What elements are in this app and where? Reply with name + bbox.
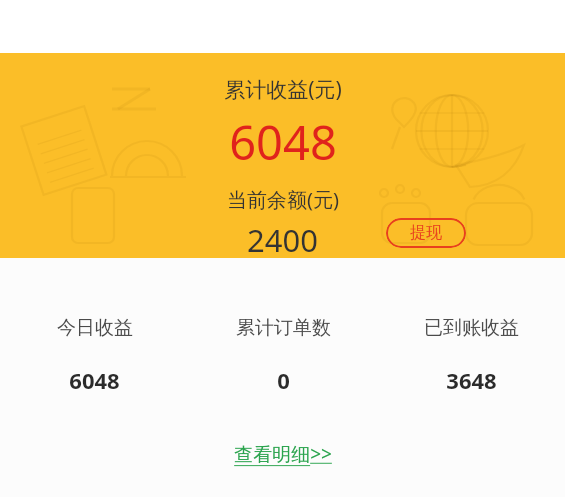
- staticText: 累计订单数: [236, 316, 331, 340]
- staticText: 0: [277, 365, 290, 395]
- button[interactable]: 查看明细>>: [226, 437, 340, 471]
- staticText: 6048: [69, 365, 120, 395]
- staticText: 当前余额(元): [227, 186, 339, 213]
- button[interactable]: 提现: [386, 218, 466, 248]
- staticText: 提现: [410, 223, 442, 243]
- button[interactable]: 今日收益: [0, 316, 189, 395]
- button[interactable]: 累计订单数: [189, 316, 377, 395]
- staticText: 6048: [229, 110, 337, 174]
- staticText: 3648: [446, 365, 497, 395]
- staticText: 今日收益: [57, 316, 133, 340]
- staticText: 2400: [247, 219, 318, 258]
- staticText: 累计收益(元): [224, 75, 342, 104]
- button[interactable]: 已到账收益: [377, 316, 565, 395]
- staticText: 查看明细>>: [234, 441, 332, 467]
- staticText: 已到账收益: [424, 316, 519, 340]
